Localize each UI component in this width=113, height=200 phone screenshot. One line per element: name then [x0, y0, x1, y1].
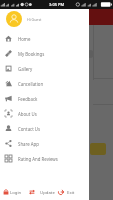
button[interactable]: About Us: [0, 106, 89, 121]
staticText: 3:05 PM: [49, 2, 65, 7]
button[interactable]: My Bookings: [0, 46, 89, 61]
button[interactable]: Share App: [0, 136, 89, 151]
staticText: Login: [10, 189, 22, 195]
staticText: Feedback: [18, 96, 38, 102]
staticText: About Us: [18, 111, 37, 117]
staticText: Cancellation: [18, 81, 44, 87]
staticText: Hi Guest: [27, 17, 42, 22]
button[interactable]: Login: [3, 183, 22, 200]
staticText: Rating And Reviews: [18, 156, 58, 162]
staticText: Exit: [67, 189, 75, 195]
button[interactable]: Update: [29, 183, 55, 200]
button[interactable]: Home: [0, 31, 89, 46]
staticText: Update: [40, 189, 55, 195]
button[interactable]: Exit: [58, 183, 75, 200]
staticText: Home: [18, 36, 31, 42]
button[interactable]: Cancellation: [0, 76, 89, 91]
staticText: Contact Us: [18, 126, 41, 132]
staticText: My Bookings: [18, 51, 45, 57]
staticText: Share App: [18, 141, 39, 147]
button[interactable]: Rating And Reviews: [0, 151, 89, 166]
button[interactable]: Contact Us: [0, 121, 89, 136]
staticText: Gallery: [18, 66, 33, 72]
button[interactable]: Feedback: [0, 91, 89, 106]
button[interactable]: Gallery: [0, 61, 89, 76]
